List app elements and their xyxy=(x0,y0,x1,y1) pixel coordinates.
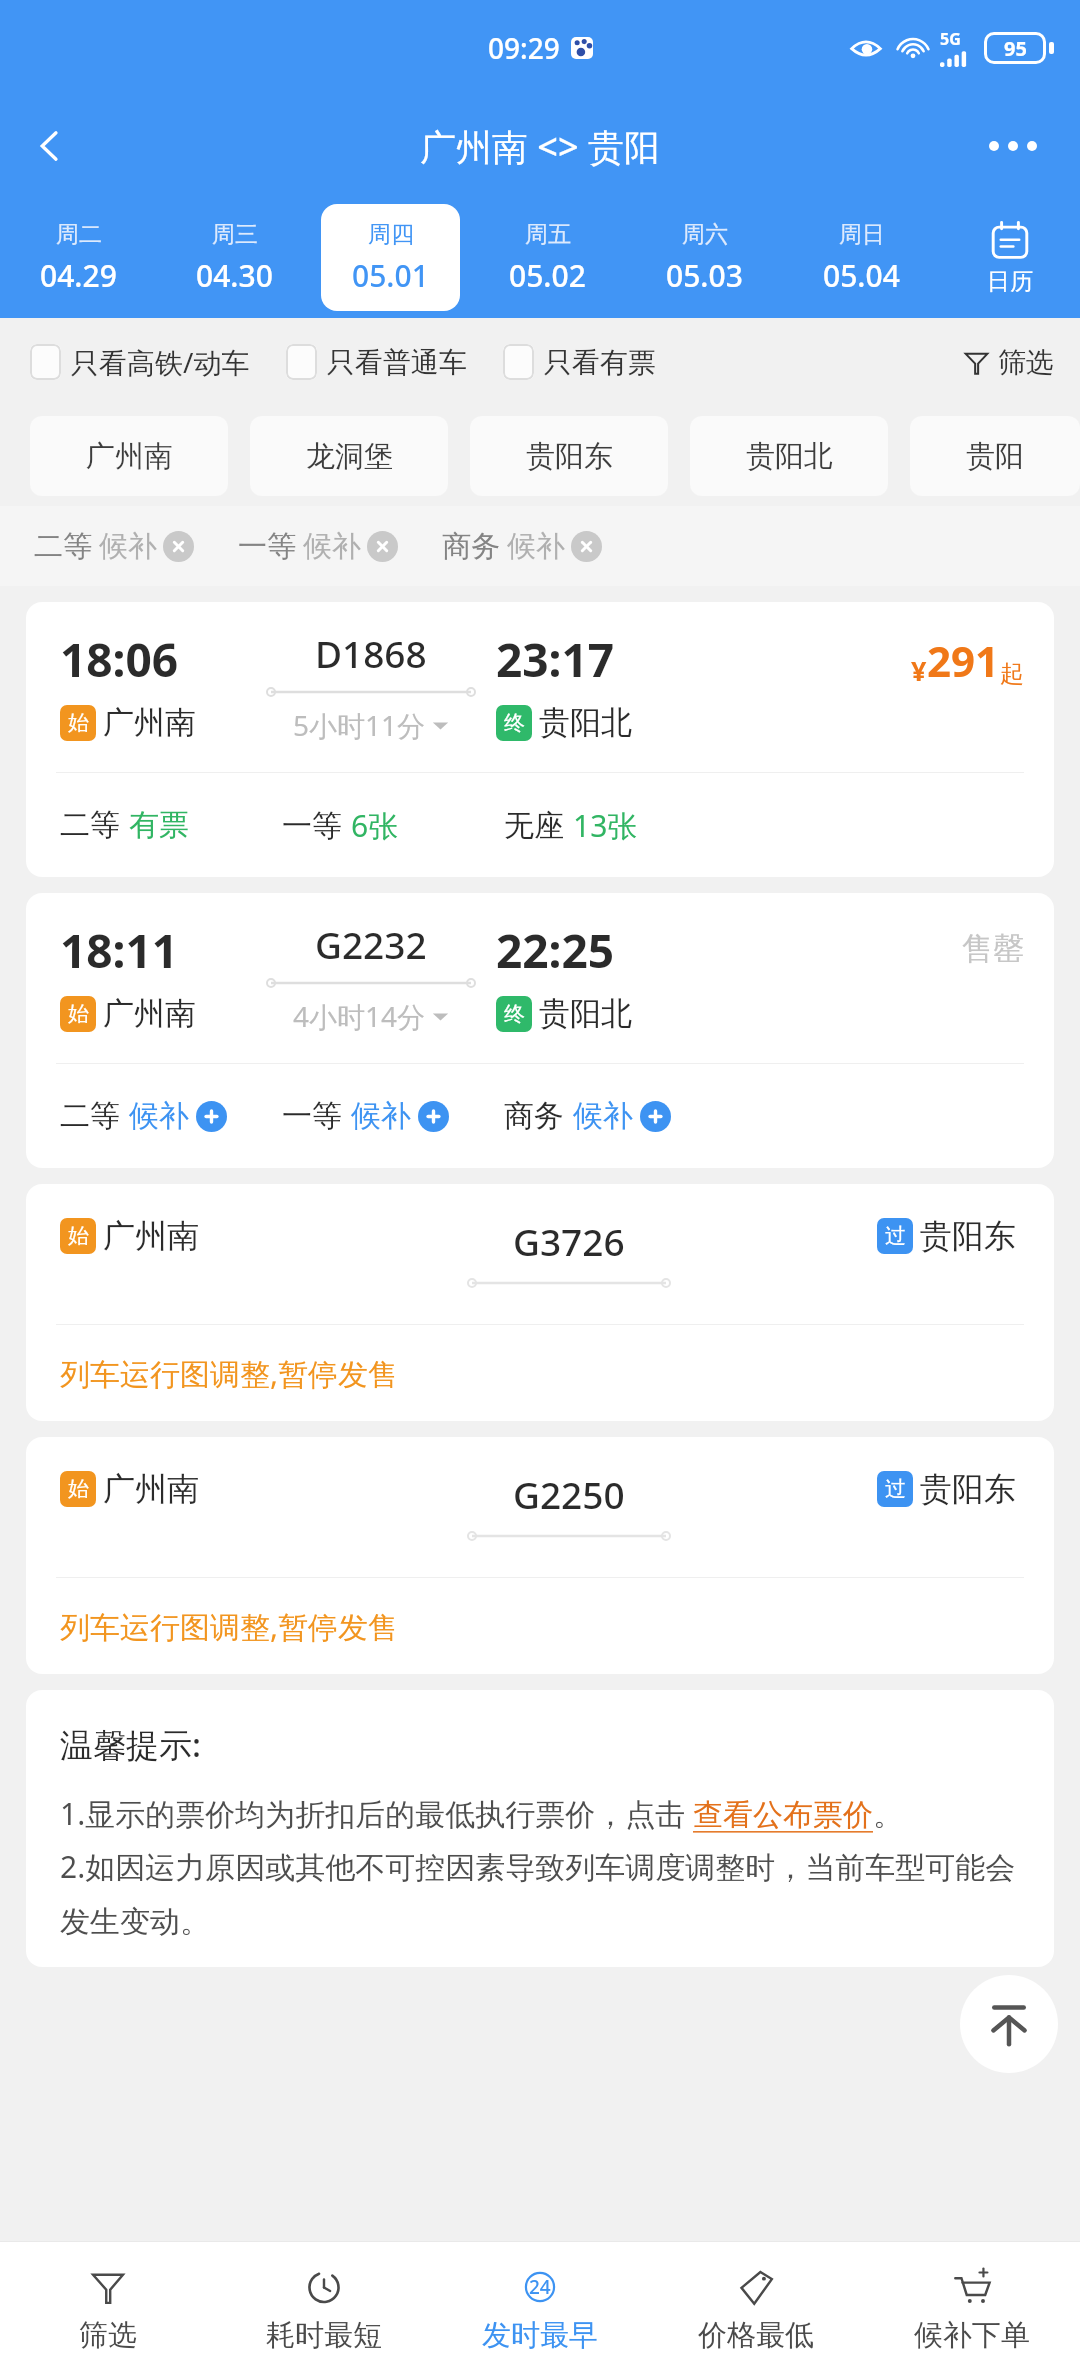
button[interactable]: 广州南 xyxy=(30,416,228,496)
staticText: 只看普通车 xyxy=(327,345,467,380)
staticText: 23:17 xyxy=(496,628,615,691)
staticText: 只看高铁/动车 xyxy=(71,343,250,381)
button[interactable]: Join waitlist xyxy=(418,1101,449,1132)
staticText: 始 xyxy=(68,1001,89,1027)
staticText: 6张 xyxy=(351,805,399,846)
button[interactable]: Calendar xyxy=(940,197,1080,318)
staticText: 发时最早 xyxy=(482,2317,598,2354)
staticText: 贵阳北 xyxy=(539,994,632,1033)
button[interactable]: 24 xyxy=(432,2242,648,2376)
staticText: 5G xyxy=(940,28,961,50)
staticText: 候补 xyxy=(99,528,157,565)
button[interactable]: 只看高铁/动车 xyxy=(30,343,250,381)
staticText: 始 xyxy=(68,710,89,736)
staticText: 无座 xyxy=(504,807,564,845)
button[interactable]: Scroll to top xyxy=(960,1975,1058,2073)
button[interactable]: More options xyxy=(968,114,1058,178)
staticText: 04.29 xyxy=(40,255,117,296)
staticText: 有票 xyxy=(129,806,189,844)
button[interactable]: 18:11 xyxy=(26,893,1054,1168)
staticText: 周五 xyxy=(525,220,571,249)
staticText: 贵阳东 xyxy=(920,1469,1016,1509)
staticText: 周三 xyxy=(212,220,258,249)
staticText: 05.02 xyxy=(509,255,586,296)
staticText: 始 xyxy=(68,1476,89,1502)
staticText: 贵阳东 xyxy=(920,1216,1016,1256)
button[interactable]: 二等 xyxy=(34,528,194,565)
staticText: G2250 xyxy=(513,1469,625,1519)
staticText: 广州南 xyxy=(103,1469,199,1509)
staticText: G2232 xyxy=(315,919,427,969)
button[interactable]: 18:06 xyxy=(26,602,1054,877)
button[interactable]: 筛选 xyxy=(963,345,1054,380)
staticText: 筛选 xyxy=(998,345,1054,380)
button[interactable]: 周日 xyxy=(792,204,931,311)
staticText: 售罄 xyxy=(962,929,1024,968)
button[interactable]: 周二 xyxy=(9,204,147,311)
staticText: 4小时14分 xyxy=(293,997,426,1035)
staticText: 列车运行图调整,暂停发售 xyxy=(60,1353,399,1394)
button[interactable]: 周三 xyxy=(165,204,303,311)
staticText: 周日 xyxy=(839,220,885,249)
button[interactable]: 周四 xyxy=(321,204,460,311)
staticText: 5小时11分 xyxy=(293,706,426,744)
button[interactable]: 耗时最短 xyxy=(216,2242,432,2376)
staticText: 贵阳 xyxy=(966,438,1024,475)
staticText: 候补 xyxy=(573,1097,633,1135)
button[interactable]: 龙洞堡 xyxy=(250,416,448,496)
staticText: 2.如因运力原因或其他不可控因素导致列车调度调整时，当前车型可能会发生变动。 xyxy=(60,1846,1024,1941)
staticText: 291 xyxy=(927,632,1000,689)
staticText: 24 xyxy=(529,2274,551,2300)
button[interactable]: 周六 xyxy=(635,204,774,311)
staticText: 05.01 xyxy=(352,255,429,296)
staticText: 广州南 xyxy=(103,703,196,742)
staticText: 商务 xyxy=(504,1097,564,1135)
button[interactable]: 候补下单 xyxy=(864,2242,1080,2376)
staticText: 周二 xyxy=(56,220,102,249)
button[interactable]: Back xyxy=(18,114,82,178)
staticText: 18:11 xyxy=(60,919,179,982)
button[interactable]: 始 xyxy=(26,1184,1054,1421)
staticText: 二等 xyxy=(60,1097,120,1135)
staticText: 候补 xyxy=(303,528,361,565)
staticText: 广州南 xyxy=(103,1216,199,1256)
button[interactable]: 商务 xyxy=(442,528,602,565)
button[interactable]: 贵阳 xyxy=(910,416,1080,496)
button[interactable]: 始 xyxy=(26,1437,1054,1674)
button[interactable]: Join waitlist xyxy=(640,1101,671,1132)
staticText: 05.03 xyxy=(666,255,743,296)
staticText: 04.30 xyxy=(196,255,273,296)
button[interactable]: 贵阳北 xyxy=(690,416,888,496)
staticText: 贵阳北 xyxy=(746,438,833,475)
staticText: 候补 xyxy=(351,1097,411,1135)
staticText: 一等 xyxy=(282,807,342,845)
staticText: 候补下单 xyxy=(914,2317,1030,2354)
button[interactable]: 贵阳东 xyxy=(470,416,668,496)
button[interactable]: 一等 xyxy=(238,528,398,565)
staticText: 候补 xyxy=(129,1097,189,1135)
button[interactable]: 价格最低 xyxy=(648,2242,864,2376)
staticText: 贵阳东 xyxy=(526,438,613,475)
staticText: 终 xyxy=(504,1001,525,1027)
button[interactable]: 周五 xyxy=(478,204,617,311)
button[interactable]: 只看有票 xyxy=(503,344,656,380)
staticText: 过 xyxy=(885,1476,906,1502)
staticText: 价格最低 xyxy=(698,2317,814,2354)
staticText: 09:29 xyxy=(488,29,560,67)
button[interactable]: Join waitlist xyxy=(196,1101,227,1132)
staticText: 95 xyxy=(1004,35,1027,62)
staticText: 1.显示的票价均为折扣后的最低执行票价，点击 查看公布票价。 xyxy=(60,1793,903,1834)
staticText: 始 xyxy=(68,1223,89,1249)
staticText: 周六 xyxy=(682,220,728,249)
staticText: 13张 xyxy=(573,805,638,846)
button[interactable]: 只看普通车 xyxy=(286,344,467,380)
staticText: 起 xyxy=(1000,659,1024,689)
staticText: 广州南 <> 贵阳 xyxy=(420,122,660,171)
staticText: 广州南 xyxy=(86,438,173,475)
staticText: 一等 xyxy=(282,1097,342,1135)
button[interactable]: 筛选 xyxy=(0,2242,216,2376)
staticText: 贵阳北 xyxy=(539,703,632,742)
staticText: 温馨提示: xyxy=(60,1722,201,1767)
staticText: 二等 xyxy=(34,528,92,565)
staticText: 广州南 xyxy=(103,994,196,1033)
